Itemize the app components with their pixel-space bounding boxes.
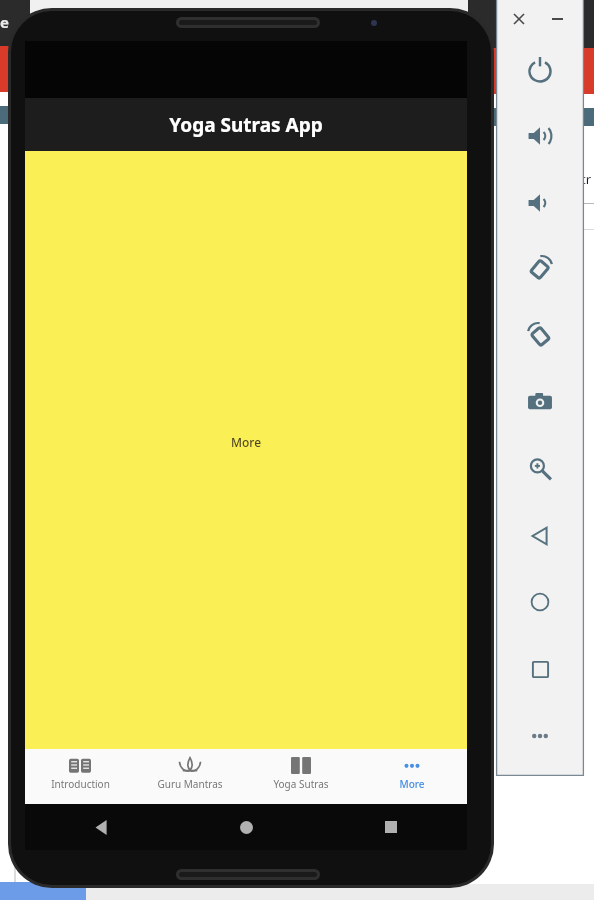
button[interactable]: Back	[85, 811, 117, 843]
button[interactable]: Introduction	[25, 749, 135, 804]
button[interactable]: Overview	[518, 647, 562, 691]
staticText: tr	[581, 170, 592, 188]
button[interactable]: Volume up	[518, 114, 562, 158]
staticText: Yoga Sutras	[273, 777, 329, 791]
button[interactable]: Volume down	[518, 181, 562, 225]
button[interactable]: Close	[508, 8, 530, 30]
button[interactable]: More	[356, 749, 467, 804]
button[interactable]: Rotate right	[518, 314, 562, 358]
button[interactable]: Guru Mantras	[135, 749, 245, 804]
button[interactable]: Rotate left	[518, 247, 562, 291]
staticText: e	[0, 12, 9, 32]
staticText: Guru Mantras	[157, 777, 223, 791]
button[interactable]: More options	[518, 714, 562, 758]
staticText: More	[231, 434, 262, 450]
button[interactable]: Power	[518, 48, 562, 92]
button[interactable]: Home	[230, 811, 262, 843]
button[interactable]: Back	[518, 514, 562, 558]
button[interactable]: Minimize	[546, 8, 568, 30]
staticText: More	[399, 777, 425, 791]
button[interactable]: Recent apps	[375, 811, 407, 843]
button[interactable]: Screenshot	[518, 380, 562, 424]
button[interactable]: Zoom	[518, 447, 562, 491]
button[interactable]: Home	[518, 580, 562, 624]
button[interactable]: Yoga Sutras	[245, 749, 356, 804]
staticText: Introduction	[51, 777, 110, 791]
staticText: Yoga Sutras App	[169, 112, 323, 138]
